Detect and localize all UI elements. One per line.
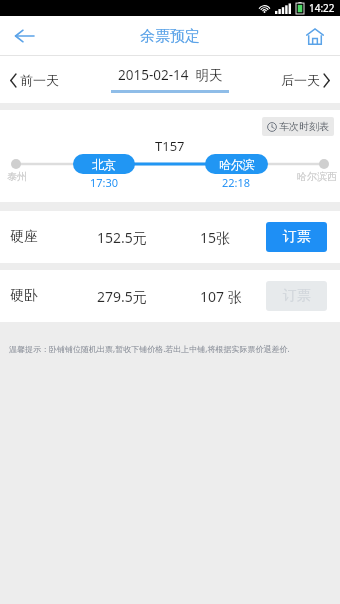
button[interactable]: 后一天 bbox=[277, 66, 334, 94]
button[interactable]: 硬座 bbox=[0, 211, 340, 263]
staticText: 152.5元 bbox=[97, 228, 147, 247]
staticText: T157 bbox=[155, 137, 185, 155]
button[interactable]: 前一天 bbox=[6, 66, 63, 94]
staticText: 22:18 bbox=[222, 175, 251, 190]
staticText: 余票预定 bbox=[140, 27, 200, 46]
button[interactable]: 订票 bbox=[266, 222, 327, 252]
button[interactable]: 哈尔滨 bbox=[205, 154, 268, 174]
staticText: 订票 bbox=[283, 228, 311, 246]
staticText: 订票 bbox=[283, 287, 311, 305]
staticText: 硬卧 bbox=[10, 287, 38, 305]
staticText: 温馨提示：卧铺铺位随机出票,暂收下铺价格.若出上中铺,将根据实际票价退差价. bbox=[9, 343, 290, 354]
staticText: 107 张 bbox=[200, 287, 242, 306]
staticText: 哈尔滨西 bbox=[297, 170, 337, 183]
button[interactable]: 订票 bbox=[266, 281, 327, 311]
staticText: 15张 bbox=[200, 228, 231, 247]
staticText: 后一天 bbox=[281, 72, 320, 88]
button[interactable]: 硬卧 bbox=[0, 270, 340, 322]
staticText: 14:22 bbox=[309, 1, 335, 15]
staticText: 哈尔滨 bbox=[219, 157, 255, 172]
staticText: 前一天 bbox=[20, 72, 59, 88]
staticText: 车次时刻表 bbox=[279, 120, 329, 133]
button[interactable]: Back bbox=[4, 16, 44, 56]
button[interactable]: 北京 bbox=[73, 154, 135, 174]
button[interactable]: Home bbox=[296, 17, 334, 55]
staticText: 279.5元 bbox=[97, 287, 147, 306]
staticText: 2015-02-14 明天 bbox=[118, 66, 223, 84]
button[interactable]: 车次时刻表 bbox=[262, 117, 334, 136]
staticText: 17:30 bbox=[90, 175, 119, 190]
button[interactable]: 2015-02-14 明天 bbox=[111, 66, 229, 93]
staticText: 泰州 bbox=[7, 170, 27, 183]
staticText: 硬座 bbox=[10, 228, 38, 246]
staticText: 北京 bbox=[92, 157, 116, 172]
